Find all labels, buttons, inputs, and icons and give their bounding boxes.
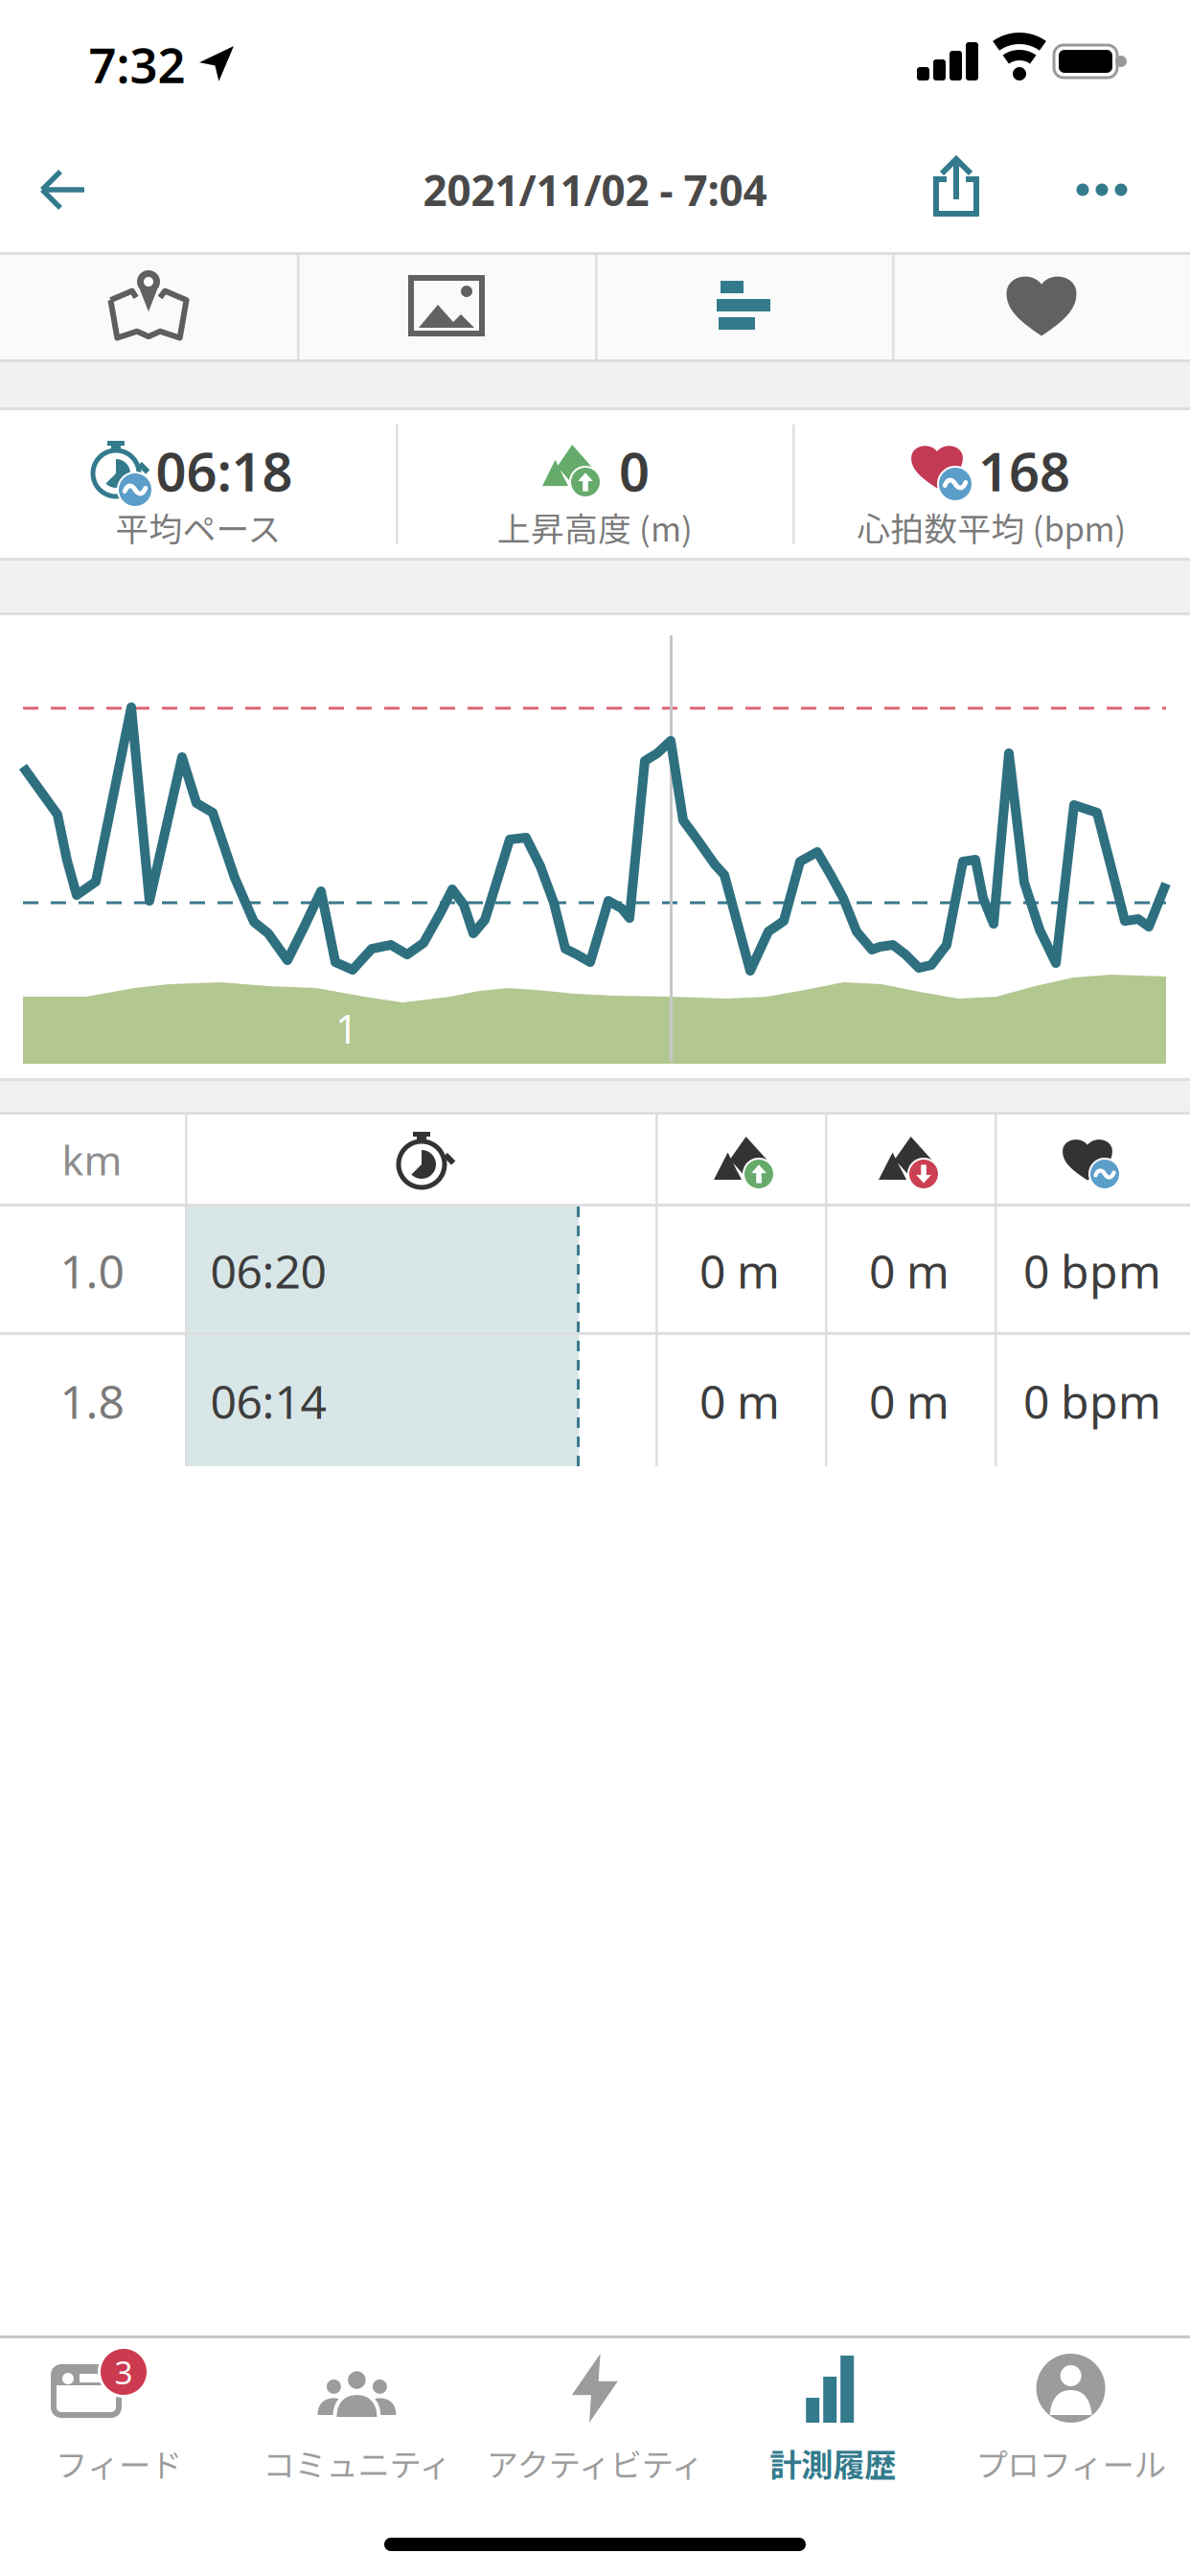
button[interactable]: Photos [411,272,482,339]
button[interactable]: Stats [717,281,772,330]
staticText: km [62,1132,122,1187]
staticText: プロフィール [976,2440,1166,2486]
staticText: 168 [978,435,1070,506]
button[interactable]: Share [933,157,979,217]
staticText: 06:18 [156,435,293,506]
staticText: 0 [619,435,650,506]
staticText: 7:32 [89,32,185,97]
button[interactable]: 3 [0,2346,238,2490]
button[interactable]: アクティビティ [476,2346,714,2490]
staticText: 0 bpm [1023,1371,1161,1432]
staticText: 0 m [699,1240,780,1301]
staticText: 06:20 [210,1240,326,1301]
button[interactable]: More [1073,171,1131,209]
staticText: 1 [335,1002,358,1055]
staticText: 0 m [869,1240,950,1301]
staticText: 0 bpm [1023,1240,1161,1301]
staticText: 1.8 [60,1371,124,1432]
button[interactable]: Back [40,171,86,209]
staticText: 上昇高度 (m) [497,503,693,551]
staticText: 心拍数平均 (bpm) [857,503,1126,551]
button[interactable]: プロフィール [952,2346,1190,2490]
staticText: アクティビティ [487,2440,703,2486]
staticText: 0 m [869,1371,950,1432]
staticText: 1.0 [60,1240,124,1301]
button[interactable]: Map [107,270,190,343]
staticText: フィード [56,2440,182,2486]
button[interactable]: コミュニティ [238,2346,476,2490]
staticText: 3 [114,2351,133,2393]
staticText: 2021/11/02 - 7:04 [423,162,767,218]
staticText: 平均ペース [115,503,281,551]
staticText: 計測履歴 [770,2440,896,2486]
button[interactable]: 計測履歴 [714,2346,952,2490]
staticText: 0 m [699,1371,780,1432]
button[interactable]: Favorite [1005,272,1078,339]
staticText: コミュニティ [263,2440,451,2486]
staticText: 06:14 [210,1371,326,1432]
